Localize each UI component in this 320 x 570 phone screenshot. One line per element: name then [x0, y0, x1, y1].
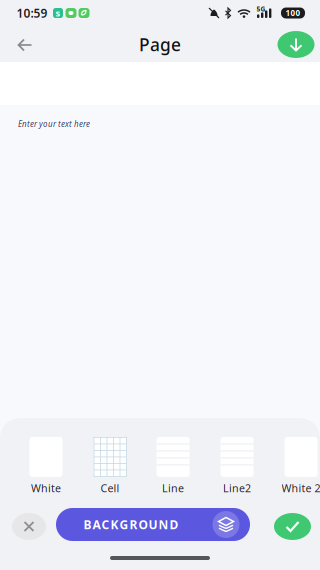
- button[interactable]: Close: [12, 513, 46, 540]
- staticText: Line2: [223, 481, 251, 495]
- button[interactable]: Line: [156, 437, 189, 495]
- button[interactable]: Download: [277, 31, 314, 58]
- button[interactable]: Back: [10, 30, 40, 60]
- staticText: White 2: [281, 481, 320, 495]
- button[interactable]: Line2: [220, 437, 253, 495]
- staticText: s: [55, 7, 60, 19]
- staticText: 10:59: [16, 5, 47, 21]
- staticText: B A C K G R O U N D: [83, 516, 178, 532]
- staticText: 100: [285, 8, 300, 18]
- staticText: Line: [162, 481, 184, 495]
- staticText: Cell: [100, 481, 119, 495]
- button[interactable]: Confirm: [274, 513, 311, 540]
- staticText: Page: [139, 33, 181, 56]
- button[interactable]: White 2: [281, 437, 320, 495]
- button[interactable]: White: [29, 437, 62, 495]
- staticText: Enter your text here: [18, 119, 90, 129]
- button[interactable]: Cell: [93, 437, 126, 495]
- button[interactable]: B A C K G R O U N D: [56, 508, 250, 541]
- staticText: 5G: [256, 5, 265, 13]
- staticText: White: [31, 481, 61, 495]
